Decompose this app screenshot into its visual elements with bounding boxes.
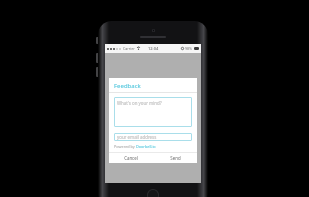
button[interactable]: Doorbell.io bbox=[136, 144, 156, 149]
staticText: 12:04 bbox=[148, 46, 159, 51]
button[interactable]: Cancel bbox=[109, 153, 153, 163]
button[interactable]: Send bbox=[153, 153, 197, 163]
button[interactable]: What's on your mind? bbox=[114, 97, 192, 127]
staticText: What's on your mind? bbox=[117, 100, 162, 106]
staticText: Send bbox=[170, 155, 181, 161]
staticText: Carrier bbox=[123, 46, 135, 51]
staticText: Powered by bbox=[114, 144, 136, 149]
staticText: 98% bbox=[185, 46, 193, 51]
button[interactable]: your email address bbox=[114, 133, 192, 141]
staticText: Feedback bbox=[114, 82, 141, 90]
staticText: your email address bbox=[117, 134, 157, 140]
staticText: Cancel bbox=[124, 155, 138, 161]
